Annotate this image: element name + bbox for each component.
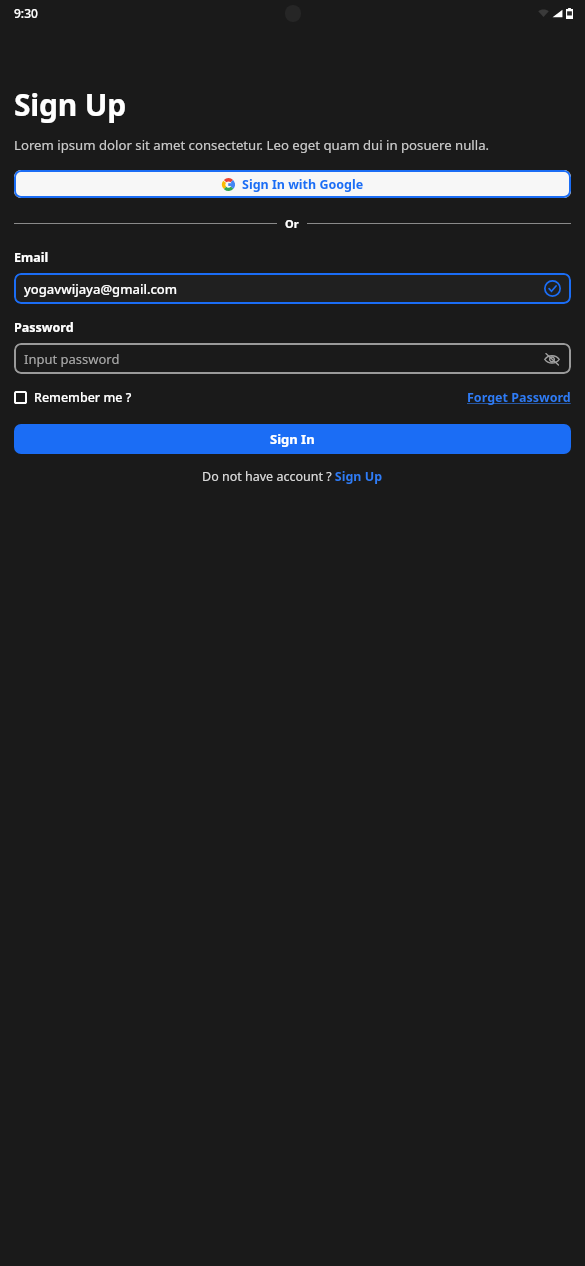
button[interactable]: Remember me ? (14, 389, 132, 406)
staticText: Sign Up (14, 84, 126, 125)
button[interactable]: Show password (543, 350, 561, 368)
button[interactable]: Sign In with Google (14, 170, 571, 198)
staticText: 9:30 (14, 5, 38, 21)
other: Email verified (544, 280, 561, 297)
staticText: Sign In with Google (242, 176, 364, 193)
button[interactable]: Input password (14, 343, 571, 374)
staticText: Input password (24, 350, 120, 368)
staticText: Password (14, 319, 74, 336)
staticText: Email (14, 249, 49, 266)
button[interactable]: yogavwijaya@gmail.com (14, 273, 571, 304)
button[interactable]: Forget Password (467, 389, 571, 406)
staticText: Remember me ? (34, 389, 132, 406)
staticText: Or (285, 216, 299, 231)
staticText: Sign In (270, 430, 315, 448)
button[interactable]: Sign In (14, 424, 571, 454)
button[interactable]: Do not have account ? Sign Up (202, 468, 383, 485)
staticText: yogavwijaya@gmail.com (24, 280, 178, 298)
staticText: Lorem ipsum dolor sit amet consectetur. … (14, 136, 490, 154)
